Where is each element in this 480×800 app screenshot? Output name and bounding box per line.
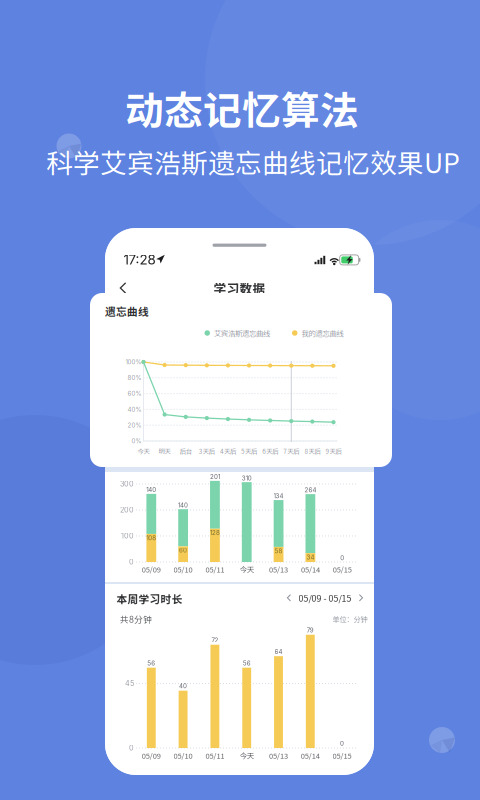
button[interactable]: 选择周 [282, 587, 367, 609]
staticText: 72 [211, 636, 218, 644]
staticText: 20% [127, 421, 141, 429]
staticText: 05/15 [333, 750, 352, 761]
staticText: 今天 [240, 750, 254, 761]
staticText: 3天后 [199, 446, 215, 456]
staticText: 79 [307, 626, 314, 634]
staticText: 56 [243, 659, 251, 667]
staticText: 本周学习时长 [116, 591, 182, 606]
staticText: 05/13 [269, 750, 288, 761]
staticText: 05/09 [142, 564, 161, 575]
staticText: 05/14 [301, 750, 320, 761]
staticText: 200 [120, 506, 134, 514]
staticText: 今天 [137, 446, 149, 456]
staticText: 34 [306, 553, 314, 561]
staticText: 40 [179, 682, 187, 690]
staticText: 64 [274, 648, 282, 655]
staticText: 4天后 [220, 446, 236, 456]
staticText: 17:28 [123, 252, 155, 268]
staticText: 我的遗忘曲线 [301, 328, 343, 338]
staticText: 100% [125, 358, 141, 366]
staticText: 05/10 [174, 564, 193, 575]
button[interactable]: 返回 [109, 277, 137, 299]
staticText: 140 [178, 501, 188, 509]
staticText: 40% [127, 406, 141, 413]
staticText: 8天后 [304, 446, 320, 456]
staticText: 5天后 [241, 446, 257, 456]
staticText: 100 [121, 532, 134, 540]
staticText: 0 [340, 554, 344, 562]
staticText: 单位：分钟 [332, 614, 367, 624]
staticText: 128 [210, 529, 220, 536]
staticText: 动态记忆算法 [125, 80, 359, 136]
staticText: 艾宾浩斯遗忘曲线 [214, 328, 270, 338]
staticText: 6天后 [262, 446, 278, 456]
staticText: 遗忘曲线 [105, 303, 149, 319]
staticText: 05/13 [269, 564, 288, 575]
staticText: 201 [210, 473, 220, 480]
staticText: 05/09 - 05/15 [298, 592, 351, 604]
staticText: 56 [147, 659, 155, 667]
staticText: 学习数据 [213, 279, 265, 297]
staticText: 05/10 [174, 750, 193, 761]
staticText: 45 [125, 679, 134, 688]
staticText: 60% [127, 390, 141, 397]
staticText: 0 [340, 740, 344, 747]
staticText: 05/09 [142, 750, 161, 761]
staticText: 明天 [159, 446, 171, 456]
staticText: 310 [242, 474, 252, 482]
staticText: 0% [131, 437, 141, 445]
staticText: 05/11 [205, 750, 224, 761]
staticText: 科学艾宾浩斯遗忘曲线记忆效果UP [46, 142, 460, 181]
staticText: 140 [146, 486, 156, 493]
staticText: 108 [146, 534, 156, 542]
staticText: 7天后 [283, 446, 299, 456]
staticText: 后台 [180, 446, 192, 456]
staticText: 60 [179, 547, 187, 554]
staticText: 0 [129, 744, 134, 752]
staticText: 共8分钟 [120, 612, 152, 625]
staticText: 134 [274, 492, 284, 500]
staticText: 0 [129, 558, 134, 566]
staticText: 05/15 [333, 564, 352, 575]
staticText: 05/11 [205, 564, 224, 575]
staticText: 80% [127, 374, 141, 381]
staticText: 9天后 [325, 446, 341, 456]
staticText: 300 [120, 480, 134, 488]
staticText: 264 [304, 486, 316, 494]
staticText: 05/14 [301, 564, 320, 575]
staticText: 58 [275, 547, 283, 555]
staticText: 今天 [240, 564, 254, 575]
